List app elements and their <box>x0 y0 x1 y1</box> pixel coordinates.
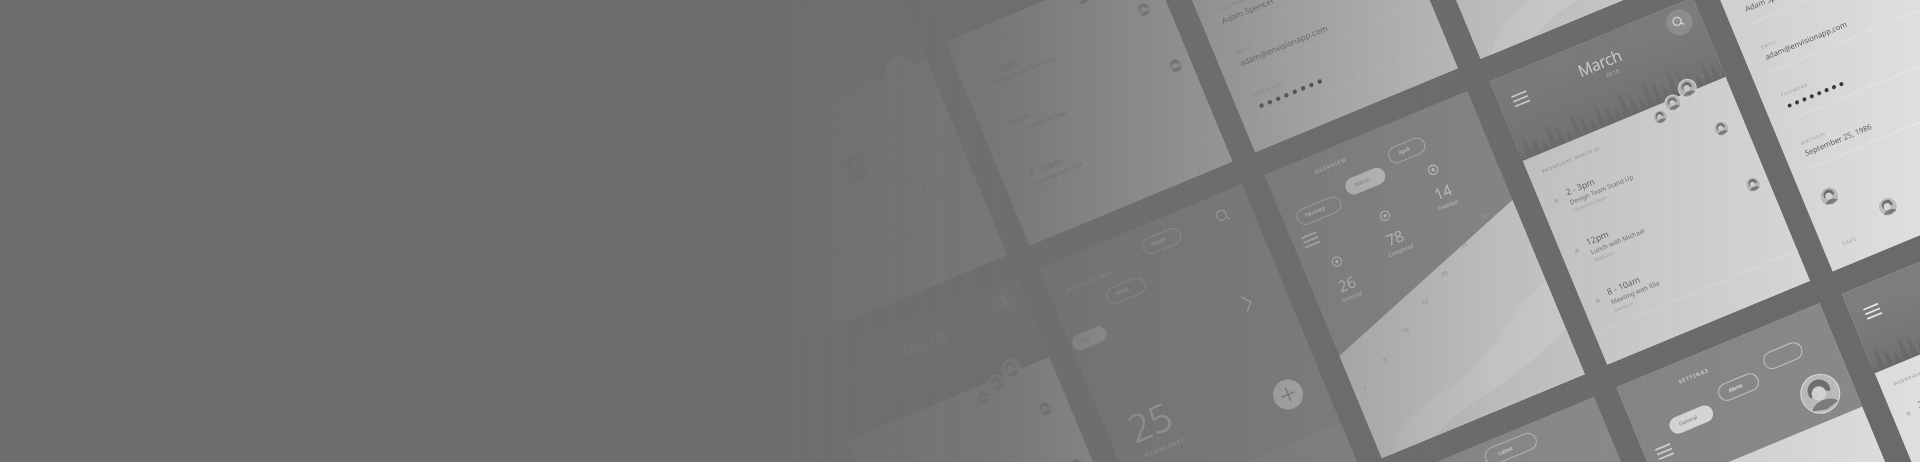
button[interactable] <box>0 0 1920 462</box>
